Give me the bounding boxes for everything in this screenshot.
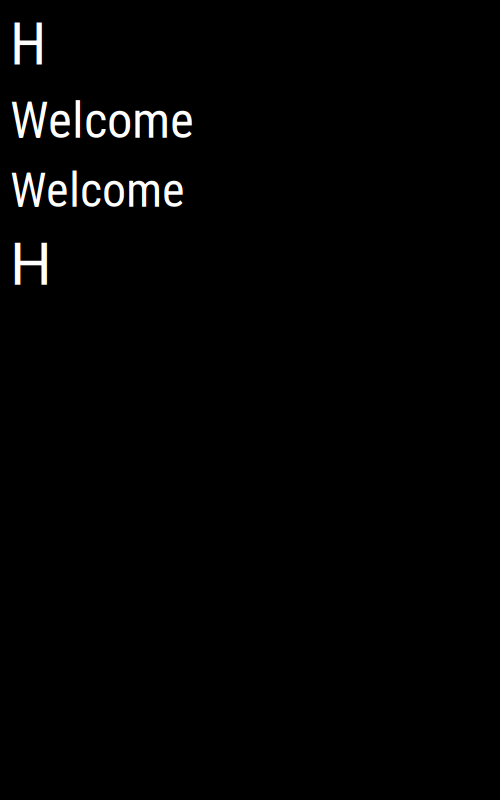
staticText: H [10, 10, 46, 79]
staticText: Welcome [10, 162, 185, 218]
staticText: Welcome [10, 91, 194, 150]
staticText: H [10, 230, 52, 299]
